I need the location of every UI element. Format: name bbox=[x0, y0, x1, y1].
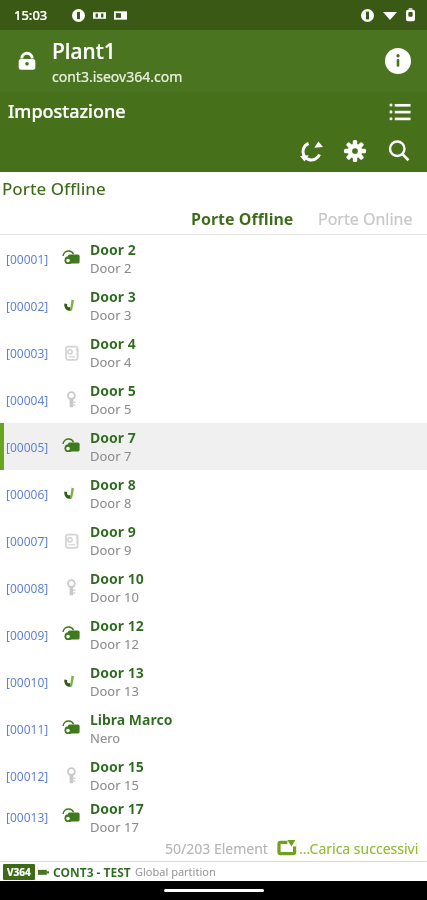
button[interactable]: [00005] bbox=[0, 423, 427, 470]
button[interactable]: Secure connection bbox=[0, 30, 427, 92]
button[interactable]: Porte Online bbox=[310, 205, 421, 233]
staticText: Porte Offline bbox=[191, 208, 294, 230]
staticText: Door 2 bbox=[90, 259, 132, 277]
button[interactable]: Porte Offline bbox=[183, 205, 302, 233]
button[interactable]: [00011] bbox=[0, 705, 427, 752]
staticText: V364 bbox=[7, 865, 31, 879]
button[interactable]: Refresh bbox=[289, 130, 333, 172]
button[interactable]: [00010] bbox=[0, 658, 427, 705]
button[interactable]: [00004] bbox=[0, 376, 427, 423]
staticText: Door 8 bbox=[90, 475, 136, 494]
staticText: Door 4 bbox=[90, 334, 136, 353]
staticText: [00002] bbox=[6, 298, 58, 314]
button[interactable]: [00013] bbox=[0, 799, 427, 835]
staticText: [00006] bbox=[6, 486, 58, 502]
staticText: [00013] bbox=[6, 809, 58, 825]
button[interactable]: [00003] bbox=[0, 329, 427, 376]
button[interactable]: [00008] bbox=[0, 564, 427, 611]
staticText: Libra Marco bbox=[90, 710, 173, 729]
staticText: cont3.iseov364.com bbox=[52, 67, 183, 86]
staticText: Door 17 bbox=[90, 818, 139, 835]
staticText: [00011] bbox=[6, 721, 58, 737]
button[interactable]: Info bbox=[383, 46, 413, 76]
staticText: Door 4 bbox=[90, 353, 132, 371]
staticText: [00009] bbox=[6, 627, 58, 643]
other: Secure connection bbox=[14, 48, 40, 74]
button[interactable]: [00012] bbox=[0, 752, 427, 799]
staticText: 50/203 Element bbox=[165, 839, 268, 858]
button[interactable]: Menu list bbox=[383, 94, 417, 128]
button[interactable]: ...Carica successivi bbox=[275, 838, 421, 858]
staticText: ...Carica successivi bbox=[299, 839, 419, 858]
button[interactable]: [00006] bbox=[0, 470, 427, 517]
staticText: [00005] bbox=[6, 439, 58, 455]
staticText: Global partition bbox=[135, 864, 216, 879]
staticText: Door 8 bbox=[90, 494, 132, 512]
staticText: Impostazione bbox=[8, 99, 126, 124]
staticText: Door 9 bbox=[90, 541, 132, 559]
staticText: Porte Online bbox=[318, 208, 413, 230]
staticText: Door 12 bbox=[90, 635, 139, 653]
staticText: Door 9 bbox=[90, 522, 136, 541]
staticText: Door 5 bbox=[90, 400, 132, 418]
staticText: [00004] bbox=[6, 392, 58, 408]
button[interactable]: [00002] bbox=[0, 282, 427, 329]
button[interactable]: [00001] bbox=[0, 235, 427, 282]
staticText: [00008] bbox=[6, 580, 58, 596]
staticText: [00007] bbox=[6, 533, 58, 549]
button[interactable]: Settings bbox=[333, 130, 377, 172]
button[interactable]: Search bbox=[377, 130, 421, 172]
button[interactable]: V364 bbox=[0, 862, 427, 881]
staticText: Door 17 bbox=[90, 799, 144, 818]
staticText: [00001] bbox=[6, 251, 58, 267]
staticText: [00012] bbox=[6, 768, 58, 784]
staticText: CONT3 - TEST bbox=[53, 864, 131, 880]
staticText: Door 2 bbox=[90, 240, 136, 259]
staticText: [00003] bbox=[6, 345, 58, 361]
button[interactable]: [00009] bbox=[0, 611, 427, 658]
staticText: Door 15 bbox=[90, 757, 144, 776]
staticText: 15:03 bbox=[14, 6, 48, 24]
staticText: Door 3 bbox=[90, 306, 132, 324]
button[interactable]: [00007] bbox=[0, 517, 427, 564]
staticText: Door 12 bbox=[90, 616, 144, 635]
staticText: Door 13 bbox=[90, 682, 139, 700]
staticText: Porte Offline bbox=[2, 177, 106, 200]
staticText: Door 10 bbox=[90, 588, 139, 606]
staticText: Plant1 bbox=[52, 37, 116, 66]
staticText: Door 3 bbox=[90, 287, 136, 306]
staticText: Door 7 bbox=[90, 447, 132, 465]
staticText: Nero bbox=[90, 729, 121, 747]
staticText: Door 15 bbox=[90, 776, 139, 794]
staticText: Door 5 bbox=[90, 381, 136, 400]
staticText: Door 13 bbox=[90, 663, 144, 682]
staticText: [00010] bbox=[6, 674, 58, 690]
staticText: Door 7 bbox=[90, 428, 136, 447]
other: Connection bbox=[38, 866, 49, 877]
staticText: Door 10 bbox=[90, 569, 144, 588]
